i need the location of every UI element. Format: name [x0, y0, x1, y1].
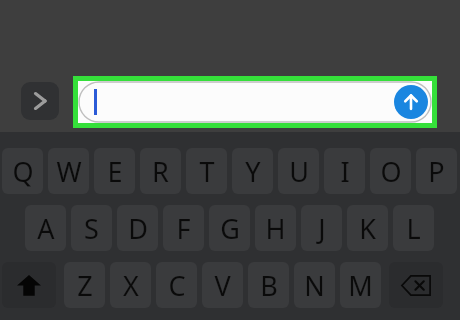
button[interactable]: Q: [2, 148, 43, 194]
staticText: U: [289, 153, 309, 190]
button[interactable]: T: [186, 148, 227, 194]
staticText: Y: [245, 153, 261, 190]
staticText: V: [214, 267, 231, 304]
staticText: H: [265, 210, 286, 247]
button[interactable]: K: [347, 205, 388, 251]
staticText: I: [340, 153, 350, 190]
button[interactable]: L: [393, 205, 434, 251]
button[interactable]: E: [94, 148, 135, 194]
button[interactable]: J: [301, 205, 342, 251]
button[interactable]: P: [416, 148, 457, 194]
button[interactable]: O: [370, 148, 411, 194]
button[interactable]: Send: [78, 81, 432, 123]
button[interactable]: Expand: [21, 82, 59, 120]
staticText: F: [176, 210, 191, 247]
staticText: D: [128, 210, 148, 247]
button[interactable]: B: [248, 262, 289, 308]
staticText: O: [380, 153, 402, 190]
button[interactable]: Backspace: [389, 262, 443, 308]
button[interactable]: X: [110, 262, 151, 308]
staticText: X: [123, 267, 139, 304]
button[interactable]: H: [255, 205, 296, 251]
button[interactable]: W: [48, 148, 89, 194]
staticText: G: [220, 210, 240, 247]
staticText: S: [84, 210, 99, 247]
staticText: Z: [77, 267, 93, 304]
staticText: M: [348, 267, 373, 304]
button[interactable]: Shift: [2, 262, 56, 308]
staticText: W: [56, 153, 82, 190]
staticText: C: [168, 267, 186, 304]
button[interactable]: M: [340, 262, 381, 308]
button[interactable]: N: [294, 262, 335, 308]
button[interactable]: Y: [232, 148, 273, 194]
staticText: R: [152, 153, 169, 190]
button[interactable]: D: [117, 205, 158, 251]
staticText: P: [428, 153, 445, 190]
button[interactable]: I: [324, 148, 365, 194]
staticText: Q: [12, 153, 34, 190]
staticText: K: [359, 210, 376, 247]
staticText: J: [318, 210, 326, 247]
button[interactable]: R: [140, 148, 181, 194]
button[interactable]: S: [71, 205, 112, 251]
button[interactable]: C: [156, 262, 197, 308]
button[interactable]: Z: [64, 262, 105, 308]
button[interactable]: F: [163, 205, 204, 251]
button[interactable]: A: [25, 205, 66, 251]
staticText: N: [304, 267, 325, 304]
staticText: B: [260, 267, 278, 304]
staticText: T: [199, 153, 215, 190]
button[interactable]: Send: [394, 85, 428, 119]
button[interactable]: V: [202, 262, 243, 308]
button[interactable]: G: [209, 205, 250, 251]
staticText: L: [406, 210, 421, 247]
staticText: A: [37, 210, 55, 247]
button[interactable]: U: [278, 148, 319, 194]
staticText: E: [107, 153, 123, 190]
